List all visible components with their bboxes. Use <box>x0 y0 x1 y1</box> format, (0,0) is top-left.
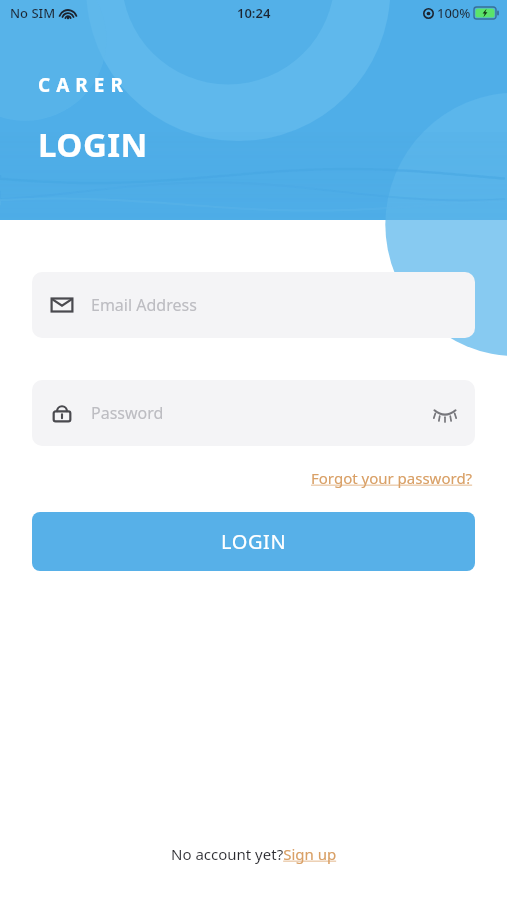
button[interactable]: Email Address <box>32 272 475 338</box>
staticText: Forgot your password? <box>311 468 473 488</box>
staticText: No SIM <box>10 4 56 22</box>
staticText: 100% <box>437 4 471 22</box>
staticText: Password <box>91 402 164 424</box>
staticText: Email Address <box>91 294 197 316</box>
button[interactable]: Password <box>32 380 475 446</box>
staticText: No account yet?Sign up <box>171 844 337 864</box>
staticText: LOGIN <box>38 122 148 167</box>
button[interactable]: Forgot your password? <box>309 466 475 490</box>
button[interactable]: Show password <box>425 393 465 433</box>
button[interactable]: No account yet?Sign up <box>167 841 341 867</box>
staticText: 10:24 <box>237 4 271 22</box>
button[interactable]: LOGIN <box>32 512 475 571</box>
staticText: LOGIN <box>221 528 287 555</box>
staticText: CARER <box>38 72 129 98</box>
